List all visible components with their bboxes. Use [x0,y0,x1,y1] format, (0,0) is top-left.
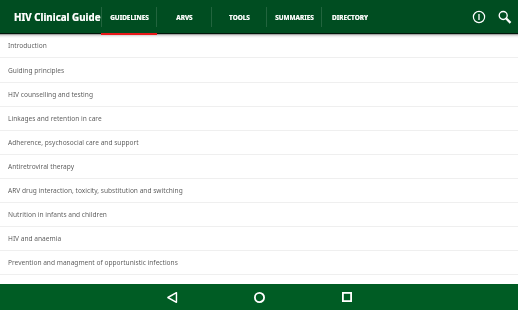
button[interactable]: Linkages and retention in care [0,107,518,131]
button[interactable]: Nutrition in infants and children [0,203,518,227]
button[interactable]: GUIDELINES [101,0,156,34]
button[interactable]: Prevention and managment of opportunisti… [0,251,518,275]
button[interactable]: ARVS [156,0,211,34]
button[interactable]: Introduction [0,34,518,58]
button[interactable]: About [467,5,491,29]
staticText: Antiretroviral therapy [8,162,75,171]
staticText: Prevention and managment of opportunisti… [8,258,178,267]
staticText: ARV drug interaction, toxicity, substitu… [8,186,183,195]
staticText: ARVS [176,13,193,22]
button[interactable]: Antiretroviral therapy [0,155,518,179]
button[interactable]: Recent apps [335,285,359,309]
button[interactable]: Guiding principles [0,59,518,83]
button[interactable]: Search [493,5,517,29]
button[interactable]: Home [247,285,271,309]
staticText: HIV Clinical Guide [14,11,101,24]
staticText: HIV and anaemia [8,234,62,243]
button[interactable]: DIRECTORY [321,0,376,34]
staticText: Guiding principles [8,66,65,75]
button[interactable]: Back [160,285,184,309]
staticText: TOOLS [229,13,250,22]
staticText: Linkages and retention in care [8,114,102,123]
staticText: GUIDELINES [110,13,149,22]
staticText: DIRECTORY [332,13,368,22]
staticText: Nutrition in infants and children [8,210,107,219]
button[interactable]: ARV drug interaction, toxicity, substitu… [0,179,518,203]
staticText: SUMMARIES [275,13,314,22]
staticText: Adherence, psychosocial care and support [8,138,139,147]
button[interactable]: TOOLS [211,0,266,34]
button[interactable]: HIV counselling and testing [0,83,518,107]
staticText: HIV counselling and testing [8,90,93,99]
staticText: Introduction [8,41,47,50]
button[interactable]: SUMMARIES [266,0,321,34]
button[interactable]: Adherence, psychosocial care and support [0,131,518,155]
button[interactable]: HIV and anaemia [0,227,518,251]
